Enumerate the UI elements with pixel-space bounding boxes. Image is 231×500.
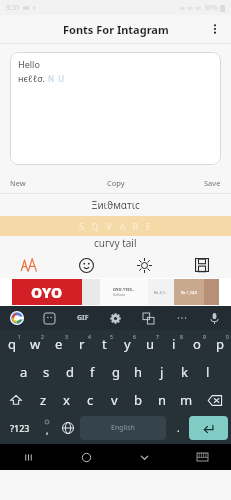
staticText: 8 bbox=[180, 334, 183, 341]
button[interactable]: More bbox=[165, 306, 198, 330]
button[interactable]: a bbox=[12, 358, 35, 386]
button[interactable]: Keyboard bbox=[173, 444, 231, 470]
staticText: t bbox=[102, 335, 107, 353]
staticText: g bbox=[112, 363, 120, 381]
staticText: i bbox=[172, 335, 176, 353]
staticText: q bbox=[8, 335, 16, 353]
staticText: GIF bbox=[77, 313, 89, 323]
button[interactable]: c bbox=[78, 386, 102, 414]
button[interactable]: r bbox=[70, 330, 93, 358]
staticText: Kolkata bbox=[113, 292, 126, 297]
button[interactable]: e bbox=[47, 330, 70, 358]
staticText: N U bbox=[48, 73, 65, 84]
button[interactable]: Copy bbox=[81, 173, 151, 193]
staticText: New bbox=[10, 178, 26, 188]
button[interactable]: Recent apps bbox=[0, 444, 57, 470]
staticText: 9:31 bbox=[6, 3, 20, 13]
button[interactable]: Home bbox=[57, 444, 115, 470]
staticText: нϵℓℓσ. bbox=[18, 72, 45, 84]
staticText: d bbox=[66, 363, 74, 381]
button[interactable]: v bbox=[102, 386, 126, 414]
button[interactable]: m bbox=[174, 386, 198, 414]
staticText: n bbox=[158, 391, 167, 409]
button[interactable]: z bbox=[32, 386, 55, 414]
staticText: l bbox=[206, 363, 210, 381]
staticText: 5 bbox=[110, 334, 113, 341]
button[interactable]: cuгvy tail bbox=[0, 236, 231, 252]
button[interactable]: Stickers bbox=[33, 306, 66, 330]
button[interactable]: Shift bbox=[0, 386, 32, 414]
button[interactable]: Change language bbox=[57, 416, 78, 440]
button[interactable]: GIF bbox=[66, 306, 99, 330]
button[interactable]: Hide keyboard bbox=[115, 444, 173, 470]
button[interactable]: Google bbox=[0, 306, 33, 330]
staticText: e bbox=[55, 335, 63, 353]
button[interactable]: q bbox=[0, 330, 24, 358]
staticText: c bbox=[87, 391, 94, 409]
button[interactable]: i bbox=[162, 330, 185, 358]
staticText: b bbox=[134, 391, 142, 409]
button[interactable]: f bbox=[81, 358, 104, 386]
staticText: w bbox=[30, 335, 41, 353]
staticText: Rs 3,1.. bbox=[154, 290, 168, 295]
staticText: ?123 bbox=[10, 422, 30, 434]
button[interactable]: . bbox=[168, 416, 189, 440]
button[interactable]: Decoration bbox=[115, 252, 173, 278]
button[interactable]: u bbox=[139, 330, 162, 358]
button[interactable]: Save bbox=[173, 252, 231, 278]
button[interactable]: Enter bbox=[189, 416, 228, 440]
button[interactable]: Ξиιϑмαтιc bbox=[0, 194, 231, 216]
staticText: 9 bbox=[203, 334, 206, 341]
button[interactable]: g bbox=[104, 358, 127, 386]
button[interactable]: New bbox=[10, 173, 81, 193]
staticText: z bbox=[40, 391, 47, 409]
button[interactable]: t bbox=[93, 330, 116, 358]
staticText: Rs 1,143 bbox=[181, 290, 197, 295]
button[interactable]: S Q V A R E bbox=[0, 216, 231, 236]
button[interactable]: Save bbox=[151, 173, 221, 193]
staticText: 1 bbox=[18, 334, 21, 341]
button[interactable]: Translate bbox=[132, 306, 165, 330]
button[interactable]: n bbox=[150, 386, 174, 414]
staticText: Hello bbox=[18, 58, 40, 70]
button[interactable]: Backspace bbox=[198, 386, 231, 414]
staticText: v bbox=[111, 391, 118, 409]
button[interactable]: d bbox=[58, 358, 81, 386]
button[interactable]: p bbox=[208, 330, 231, 358]
staticText: 7 bbox=[156, 334, 159, 341]
staticText: f bbox=[90, 363, 95, 381]
button[interactable]: j bbox=[150, 358, 173, 386]
staticText: S Q V A R E bbox=[79, 220, 153, 232]
button[interactable]: Font style bbox=[0, 252, 57, 278]
button[interactable]: English bbox=[80, 416, 166, 440]
staticText: Save bbox=[204, 178, 221, 188]
button[interactable]: k bbox=[173, 358, 196, 386]
staticText: English bbox=[111, 423, 135, 433]
button[interactable]: ?123 bbox=[3, 416, 36, 440]
staticText: y bbox=[124, 335, 131, 353]
staticText: a bbox=[20, 363, 28, 381]
button[interactable]: l bbox=[196, 358, 219, 386]
button[interactable]: y bbox=[116, 330, 139, 358]
button[interactable]: , bbox=[36, 416, 57, 440]
staticText: 2 bbox=[41, 334, 44, 341]
staticText: OYO 1193.. bbox=[113, 287, 135, 292]
staticText: 4 bbox=[88, 334, 91, 341]
button[interactable]: h bbox=[127, 358, 150, 386]
button[interactable]: Settings bbox=[99, 306, 132, 330]
button[interactable]: Emoji bbox=[57, 252, 115, 278]
staticText: o bbox=[193, 335, 201, 353]
button[interactable]: x bbox=[55, 386, 78, 414]
button[interactable]: Advertisement bbox=[12, 279, 219, 305]
button[interactable]: w bbox=[24, 330, 47, 358]
button[interactable]: More options bbox=[203, 17, 227, 41]
staticText: m bbox=[180, 391, 193, 409]
button[interactable]: s bbox=[35, 358, 58, 386]
button[interactable]: Hello bbox=[10, 52, 221, 165]
staticText: p bbox=[216, 335, 224, 353]
staticText: 38% bbox=[204, 3, 218, 13]
staticText: Ξиιϑмαтιc bbox=[91, 198, 140, 212]
button[interactable]: b bbox=[126, 386, 150, 414]
button[interactable]: o bbox=[185, 330, 208, 358]
button[interactable]: Voice input bbox=[198, 306, 231, 330]
